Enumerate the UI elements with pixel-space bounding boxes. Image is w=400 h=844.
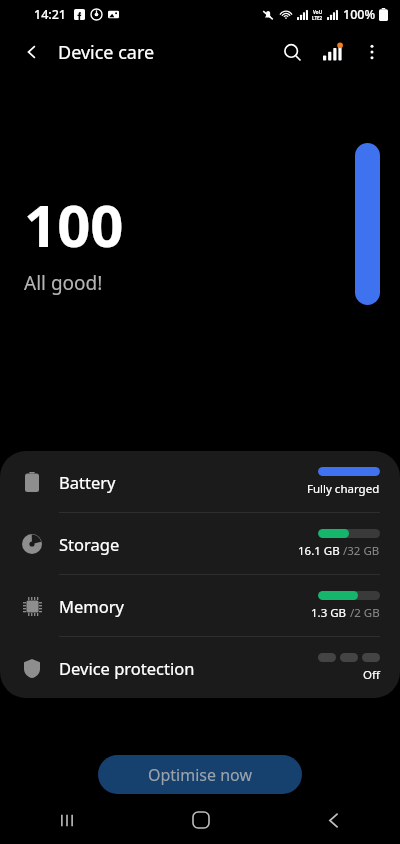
staticText: Battery <box>59 471 116 493</box>
staticText: Memory <box>59 595 124 617</box>
button[interactable]: Back <box>267 796 400 844</box>
button[interactable]: Search <box>272 32 312 72</box>
staticText: Device care <box>58 40 155 65</box>
staticText: All good! <box>24 270 103 296</box>
staticText: VoU <box>313 9 323 15</box>
button[interactable]: Device protection <box>0 637 400 698</box>
staticText: 16.1 GB <box>298 543 340 559</box>
staticText: Device protection <box>59 657 195 679</box>
button[interactable]: Home <box>134 796 267 844</box>
staticText: Optimise now <box>148 764 253 786</box>
button[interactable]: Memory <box>0 575 400 636</box>
staticText: 100 <box>24 185 124 264</box>
button[interactable]: Optimise now <box>98 755 302 794</box>
staticText: /2 GB <box>347 605 380 621</box>
button[interactable]: Recent apps <box>0 796 134 844</box>
button[interactable]: Storage <box>0 513 400 574</box>
staticText: LTE2 <box>312 15 323 21</box>
button[interactable]: Back <box>14 34 50 70</box>
button[interactable]: Battery <box>0 451 400 512</box>
staticText: 14:21 <box>34 6 67 23</box>
button[interactable]: More options <box>352 32 392 72</box>
staticText: Off <box>363 667 380 683</box>
staticText: Fully charged <box>307 481 380 497</box>
staticText: /32 GB <box>340 543 380 559</box>
staticText: 1.3 GB <box>311 605 347 621</box>
staticText: 100% <box>343 6 376 23</box>
staticText: Storage <box>59 533 120 555</box>
button[interactable]: Usage statistics <box>312 32 352 72</box>
